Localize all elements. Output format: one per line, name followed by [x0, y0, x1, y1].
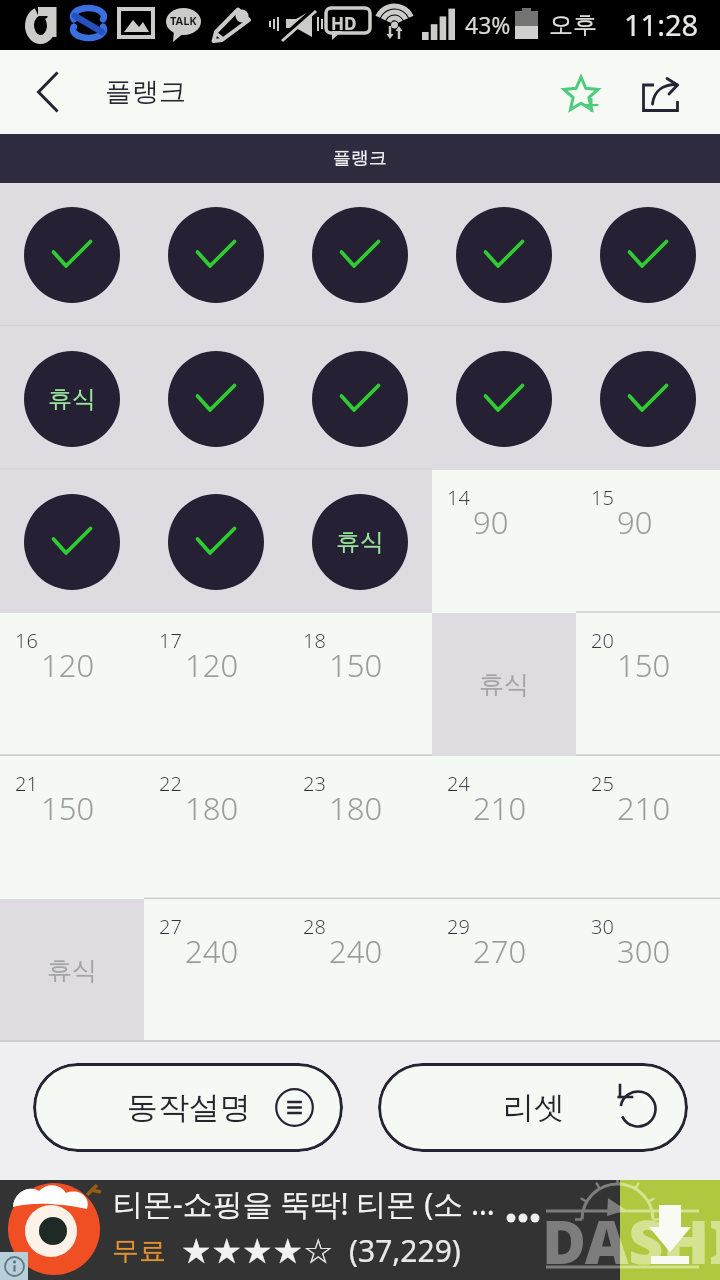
staticText: 180: [185, 787, 239, 829]
button[interactable]: 15: [576, 470, 720, 613]
staticText: 43%: [465, 9, 511, 40]
staticText: 24: [447, 770, 470, 797]
staticText: 300: [617, 930, 671, 972]
button[interactable]: [144, 183, 288, 327]
staticText: 150: [329, 644, 383, 686]
button[interactable]: Ad info: [0, 1252, 28, 1280]
button[interactable]: 22: [144, 756, 288, 899]
staticText: ★★★★☆: [181, 1231, 334, 1271]
button[interactable]: 20: [576, 613, 720, 756]
staticText: 240: [185, 930, 239, 972]
staticText: 17: [159, 627, 182, 654]
staticText: 210: [617, 787, 671, 829]
button[interactable]: 16: [0, 613, 144, 756]
staticText: 28: [303, 913, 326, 940]
staticText: 무료: [112, 1234, 166, 1268]
button[interactable]: Back: [0, 50, 96, 134]
staticText: HD: [331, 12, 357, 35]
button[interactable]: 동작설명: [33, 1063, 343, 1152]
staticText: 플랭크: [105, 75, 186, 109]
button[interactable]: 30: [576, 899, 720, 1042]
button[interactable]: 23: [288, 756, 432, 899]
button[interactable]: 휴식: [432, 613, 576, 756]
button[interactable]: [0, 183, 144, 327]
staticText: (37,229): [349, 1230, 461, 1271]
staticText: 휴식: [48, 384, 96, 414]
staticText: 휴식: [479, 669, 529, 700]
button[interactable]: 28: [288, 899, 432, 1042]
staticText: 21: [15, 770, 38, 797]
button[interactable]: 휴식: [288, 470, 432, 613]
button[interactable]: [144, 470, 288, 613]
staticText: TALK: [170, 13, 197, 28]
staticText: 11:28: [624, 5, 699, 44]
staticText: 휴식: [47, 955, 97, 986]
staticText: 동작설명: [127, 1088, 251, 1127]
button[interactable]: Favorite: [543, 50, 619, 134]
staticText: 18: [303, 627, 326, 654]
button[interactable]: [0, 470, 144, 613]
staticText: 15: [591, 484, 614, 511]
staticText: 오후: [549, 10, 597, 40]
button[interactable]: 25: [576, 756, 720, 899]
staticText: 180: [329, 787, 383, 829]
button[interactable]: [432, 183, 576, 327]
staticText: 22: [159, 770, 182, 797]
button[interactable]: 14: [432, 470, 576, 613]
staticText: 120: [185, 644, 239, 686]
staticText: 20: [591, 627, 614, 654]
button[interactable]: [576, 183, 720, 327]
button[interactable]: 27: [144, 899, 288, 1042]
button[interactable]: [288, 327, 432, 470]
button[interactable]: [576, 327, 720, 470]
button[interactable]: 24: [432, 756, 576, 899]
staticText: 휴식: [336, 527, 384, 557]
staticText: 25: [591, 770, 614, 797]
button[interactable]: 리셋: [378, 1063, 688, 1152]
staticText: 150: [41, 787, 95, 829]
staticText: 플랭크: [333, 147, 387, 170]
staticText: 리셋: [503, 1088, 565, 1127]
staticText: 240: [329, 930, 383, 972]
button[interactable]: 18: [288, 613, 432, 756]
staticText: 27: [159, 913, 182, 940]
button[interactable]: 29: [432, 899, 576, 1042]
staticText: 270: [473, 930, 527, 972]
staticText: 90: [617, 501, 653, 543]
button[interactable]: Advertisement: [0, 1180, 720, 1280]
button[interactable]: [432, 327, 576, 470]
staticText: 30: [591, 913, 614, 940]
staticText: 210: [473, 787, 527, 829]
staticText: 120: [41, 644, 95, 686]
button[interactable]: 휴식: [0, 327, 144, 470]
button[interactable]: [288, 183, 432, 327]
button[interactable]: [144, 327, 288, 470]
button[interactable]: 21: [0, 756, 144, 899]
staticText: 23: [303, 770, 326, 797]
staticText: 16: [15, 627, 38, 654]
staticText: 150: [617, 644, 671, 686]
button[interactable]: 휴식: [0, 899, 144, 1042]
staticText: 90: [473, 501, 509, 543]
staticText: 29: [447, 913, 470, 940]
staticText: 14: [447, 484, 470, 511]
staticText: 티몬-쇼핑을 뚝딱! 티몬 (소 …: [113, 1183, 495, 1224]
button[interactable]: Share: [627, 50, 693, 134]
button[interactable]: 17: [144, 613, 288, 756]
